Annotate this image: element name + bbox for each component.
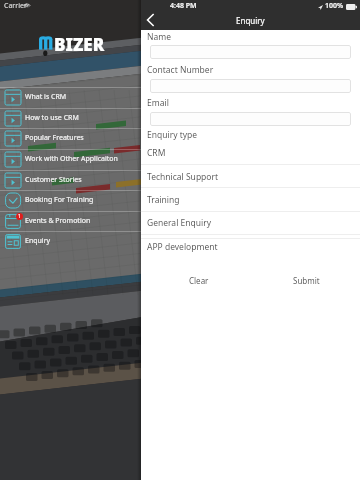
staticText: Enquiry xyxy=(236,15,265,26)
button[interactable]: Customer Stories xyxy=(0,170,141,191)
staticText: Contact Number xyxy=(147,64,214,76)
button[interactable]: How to use CRM xyxy=(0,108,141,129)
staticText: Clear xyxy=(189,275,209,286)
staticText: Popular Freatures xyxy=(25,133,84,143)
staticText: General Enquiry xyxy=(147,217,212,229)
button[interactable]: Enquiry xyxy=(0,231,141,252)
staticText: Name xyxy=(147,31,171,43)
button[interactable]: Submit xyxy=(284,272,328,288)
button[interactable] xyxy=(141,234,360,258)
button[interactable]: Back xyxy=(139,9,161,31)
button[interactable]: What is CRM xyxy=(0,87,141,108)
staticText: Submit xyxy=(293,275,320,286)
button[interactable]: Booking For Training xyxy=(0,190,141,211)
staticText: BIZER xyxy=(54,33,105,56)
staticText: Work with Other Applicaiton xyxy=(25,154,118,164)
button[interactable]: 1 xyxy=(0,211,141,232)
staticText: Events & Promotion xyxy=(25,216,91,226)
button[interactable] xyxy=(150,112,351,126)
staticText: Email xyxy=(147,97,169,109)
button[interactable] xyxy=(141,187,360,211)
staticText: APP development xyxy=(147,241,218,253)
button[interactable] xyxy=(141,164,360,188)
button[interactable]: Clear xyxy=(179,272,219,288)
staticText: Carrier xyxy=(4,1,27,11)
button[interactable] xyxy=(141,140,360,164)
staticText: Customer Stories xyxy=(25,175,82,185)
staticText: CRM xyxy=(147,147,166,159)
staticText: What is CRM xyxy=(25,92,67,102)
staticText: Enquiry type xyxy=(147,129,198,141)
staticText: 100% xyxy=(325,1,344,11)
button[interactable] xyxy=(150,79,351,93)
staticText: Enquiry xyxy=(25,236,51,246)
staticText: 1 xyxy=(18,213,21,220)
staticText: Training xyxy=(147,194,180,206)
button[interactable]: Work with Other Applicaiton xyxy=(0,149,141,170)
button[interactable]: Popular Freatures xyxy=(0,128,141,149)
staticText: Technical Support xyxy=(147,171,219,183)
staticText: Booking For Training xyxy=(25,195,94,205)
staticText: 4:48 PM xyxy=(170,1,197,11)
button[interactable] xyxy=(141,211,360,234)
staticText: How to use CRM xyxy=(25,113,79,123)
button[interactable] xyxy=(150,45,351,59)
